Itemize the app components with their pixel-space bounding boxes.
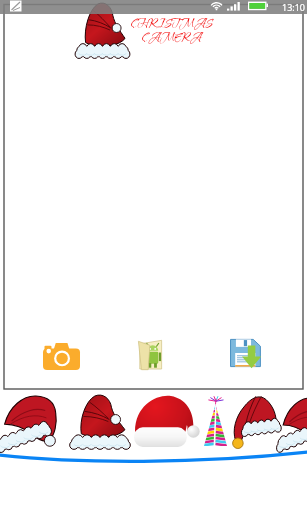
staticText: CHRISTMAS	[131, 16, 213, 32]
staticText: CAMERA	[142, 30, 202, 46]
button[interactable]: Open gallery	[131, 334, 171, 374]
button[interactable]: Save image	[227, 334, 265, 372]
staticText: 13:10	[282, 1, 306, 13]
button[interactable]: Take photo	[36, 336, 87, 376]
